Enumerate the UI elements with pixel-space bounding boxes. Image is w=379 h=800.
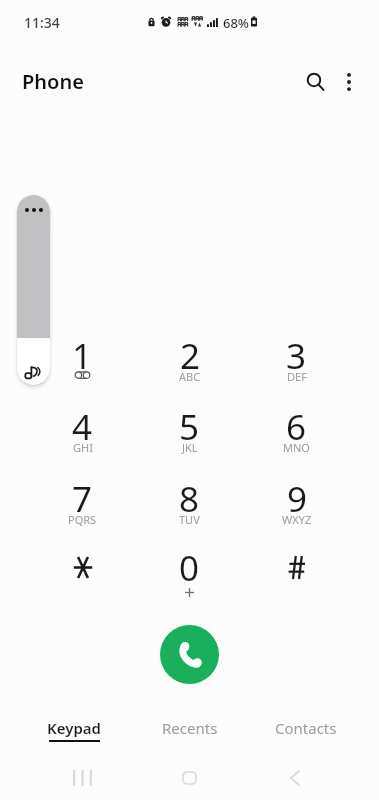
button[interactable]: Keypad <box>15 706 132 754</box>
staticText: Contacts <box>275 718 337 738</box>
button[interactable]: 9 <box>243 475 350 544</box>
staticText: JKL <box>182 440 198 455</box>
button[interactable]: Recent apps <box>46 757 119 800</box>
staticText: 8 <box>179 475 200 523</box>
staticText: 11:34 <box>24 13 60 32</box>
button[interactable]: Home <box>153 757 226 800</box>
staticText: 2 <box>180 332 201 380</box>
staticText: ABC <box>179 369 201 384</box>
button[interactable]: Call <box>160 625 219 684</box>
button[interactable]: Recents <box>132 706 248 754</box>
button[interactable]: 4 <box>29 403 136 475</box>
staticText: TUV <box>179 512 200 527</box>
button[interactable]: More options <box>327 60 370 103</box>
staticText: WXYZ <box>282 512 312 527</box>
staticText: 0 <box>179 544 200 592</box>
button[interactable]: pound <box>243 544 350 615</box>
staticText: 68% <box>223 14 249 32</box>
staticText: 4 <box>72 403 93 451</box>
staticText: DEF <box>287 369 307 384</box>
button[interactable]: Back <box>258 757 331 800</box>
staticText: Recents <box>162 718 218 738</box>
button[interactable]: 2 <box>136 332 243 403</box>
button[interactable]: Search <box>294 60 337 103</box>
button[interactable]: 8 <box>136 475 243 544</box>
staticText: 5 <box>179 403 200 451</box>
button[interactable]: 0 <box>136 544 243 615</box>
staticText: 7 <box>72 475 93 523</box>
button[interactable]: star <box>29 544 136 615</box>
button[interactable]: 6 <box>243 403 350 475</box>
staticText: 1 <box>72 332 93 380</box>
button[interactable]: 7 <box>29 475 136 544</box>
staticText: Phone <box>22 68 84 95</box>
button[interactable]: 5 <box>136 403 243 475</box>
staticText: 3 <box>286 332 307 380</box>
button[interactable]: 1 <box>29 332 136 403</box>
staticText: GHI <box>73 440 93 455</box>
staticText: 9 <box>287 475 308 523</box>
staticText: MNO <box>283 440 310 455</box>
staticText: PQRS <box>68 512 97 527</box>
staticText: Keypad <box>47 718 101 738</box>
button[interactable]: SIM card selector <box>17 195 50 385</box>
staticText: 6 <box>286 403 307 451</box>
button[interactable]: Contacts <box>248 706 364 754</box>
button[interactable]: 3 <box>243 332 350 403</box>
